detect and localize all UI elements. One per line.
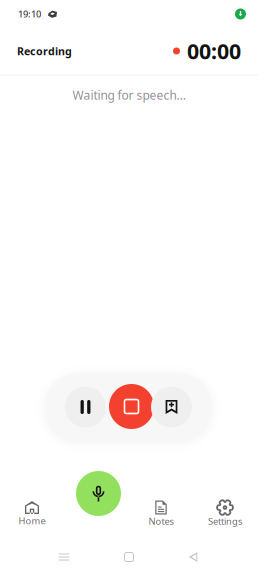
staticText: 19:10 (18, 8, 41, 20)
button[interactable]: Notes (136, 499, 186, 529)
staticText: Notes (148, 515, 173, 527)
button[interactable]: Home (7, 499, 57, 529)
staticText: 00:00 (187, 37, 241, 65)
button[interactable]: Recents (52, 545, 76, 569)
button[interactable]: Record (76, 471, 121, 516)
button[interactable]: Back (181, 545, 205, 569)
staticText: Recording (17, 44, 72, 58)
button[interactable]: Home (117, 545, 141, 569)
button[interactable]: Settings (200, 499, 250, 529)
staticText: Settings (208, 515, 242, 527)
button[interactable]: Stop recording (109, 384, 154, 429)
button[interactable]: Pause (65, 386, 106, 427)
staticText: Home (18, 514, 45, 527)
button[interactable]: Add bookmark (151, 386, 192, 427)
staticText: Waiting for speech… (72, 87, 185, 103)
